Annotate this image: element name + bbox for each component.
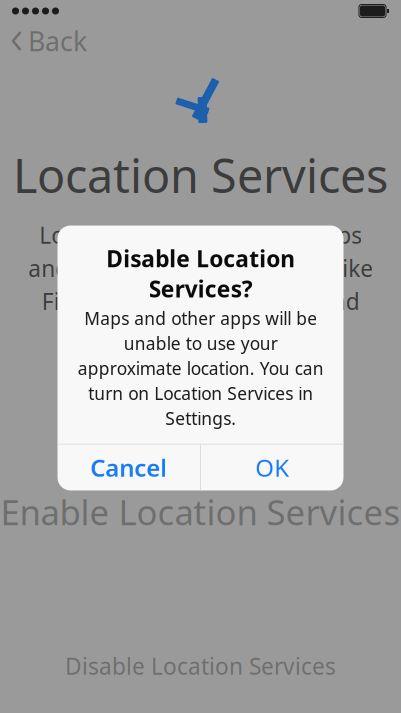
staticText: Disable Location Services bbox=[65, 651, 336, 681]
staticText: OK bbox=[255, 452, 289, 483]
button[interactable]: Disable Location Services bbox=[0, 641, 401, 691]
staticText: Disable Location Services? bbox=[106, 243, 295, 304]
button[interactable]: Back bbox=[0, 17, 87, 65]
staticText: Cancel bbox=[90, 452, 167, 483]
staticText: Location Services allows Maps and other … bbox=[28, 220, 373, 382]
staticText: Enable Location Services bbox=[0, 489, 400, 535]
staticText: Location Services bbox=[13, 144, 388, 206]
staticText: Back bbox=[28, 23, 87, 59]
staticText: Maps and other apps will be unable to us… bbox=[77, 307, 323, 430]
button[interactable]: Enable Location Services bbox=[0, 479, 401, 545]
button[interactable]: OK bbox=[201, 444, 343, 490]
button[interactable]: Cancel bbox=[57, 444, 200, 490]
